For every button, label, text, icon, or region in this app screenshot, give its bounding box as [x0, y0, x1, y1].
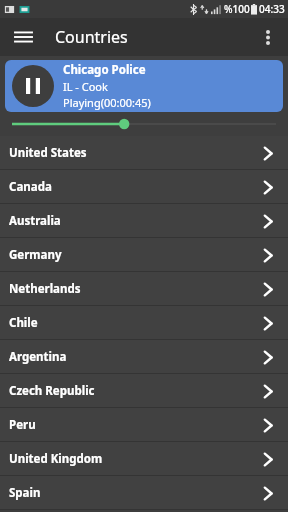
button[interactable]: United States	[0, 136, 288, 170]
button[interactable]: Open navigation menu	[8, 22, 38, 52]
staticText: Argentina	[9, 349, 67, 365]
staticText: Australia	[9, 213, 61, 229]
staticText: United States	[9, 145, 87, 161]
button[interactable]: Germany	[0, 238, 288, 272]
button[interactable]: Australia	[0, 204, 288, 238]
button[interactable]: Volume	[0, 112, 288, 136]
staticText: Playing(00:00:45)	[63, 95, 151, 110]
button[interactable]: Peru	[0, 408, 288, 442]
button[interactable]: Czech Republic	[0, 374, 288, 408]
button[interactable]: Pause	[12, 65, 54, 107]
staticText: 04:33	[259, 2, 285, 16]
staticText: Germany	[9, 247, 62, 263]
button[interactable]: United Kingdom	[0, 442, 288, 476]
staticText: United Kingdom	[9, 451, 103, 467]
button[interactable]: Spain	[0, 476, 288, 510]
staticText: IL - Cook	[63, 79, 108, 94]
staticText: Chile	[9, 315, 38, 331]
button[interactable]: Argentina	[0, 340, 288, 374]
staticText: %100	[224, 2, 250, 16]
button[interactable]: Chile	[0, 306, 288, 340]
button[interactable]: Canada	[0, 170, 288, 204]
staticText: Countries	[55, 26, 128, 48]
staticText: Spain	[9, 485, 41, 501]
staticText: Czech Republic	[9, 383, 95, 399]
button[interactable]: Pause	[5, 60, 283, 112]
staticText: Netherlands	[9, 281, 81, 297]
button[interactable]: Netherlands	[0, 272, 288, 306]
staticText: Chicago Police	[63, 62, 146, 78]
staticText: Canada	[9, 179, 52, 195]
button[interactable]: More options	[253, 22, 283, 52]
staticText: Peru	[9, 417, 36, 433]
